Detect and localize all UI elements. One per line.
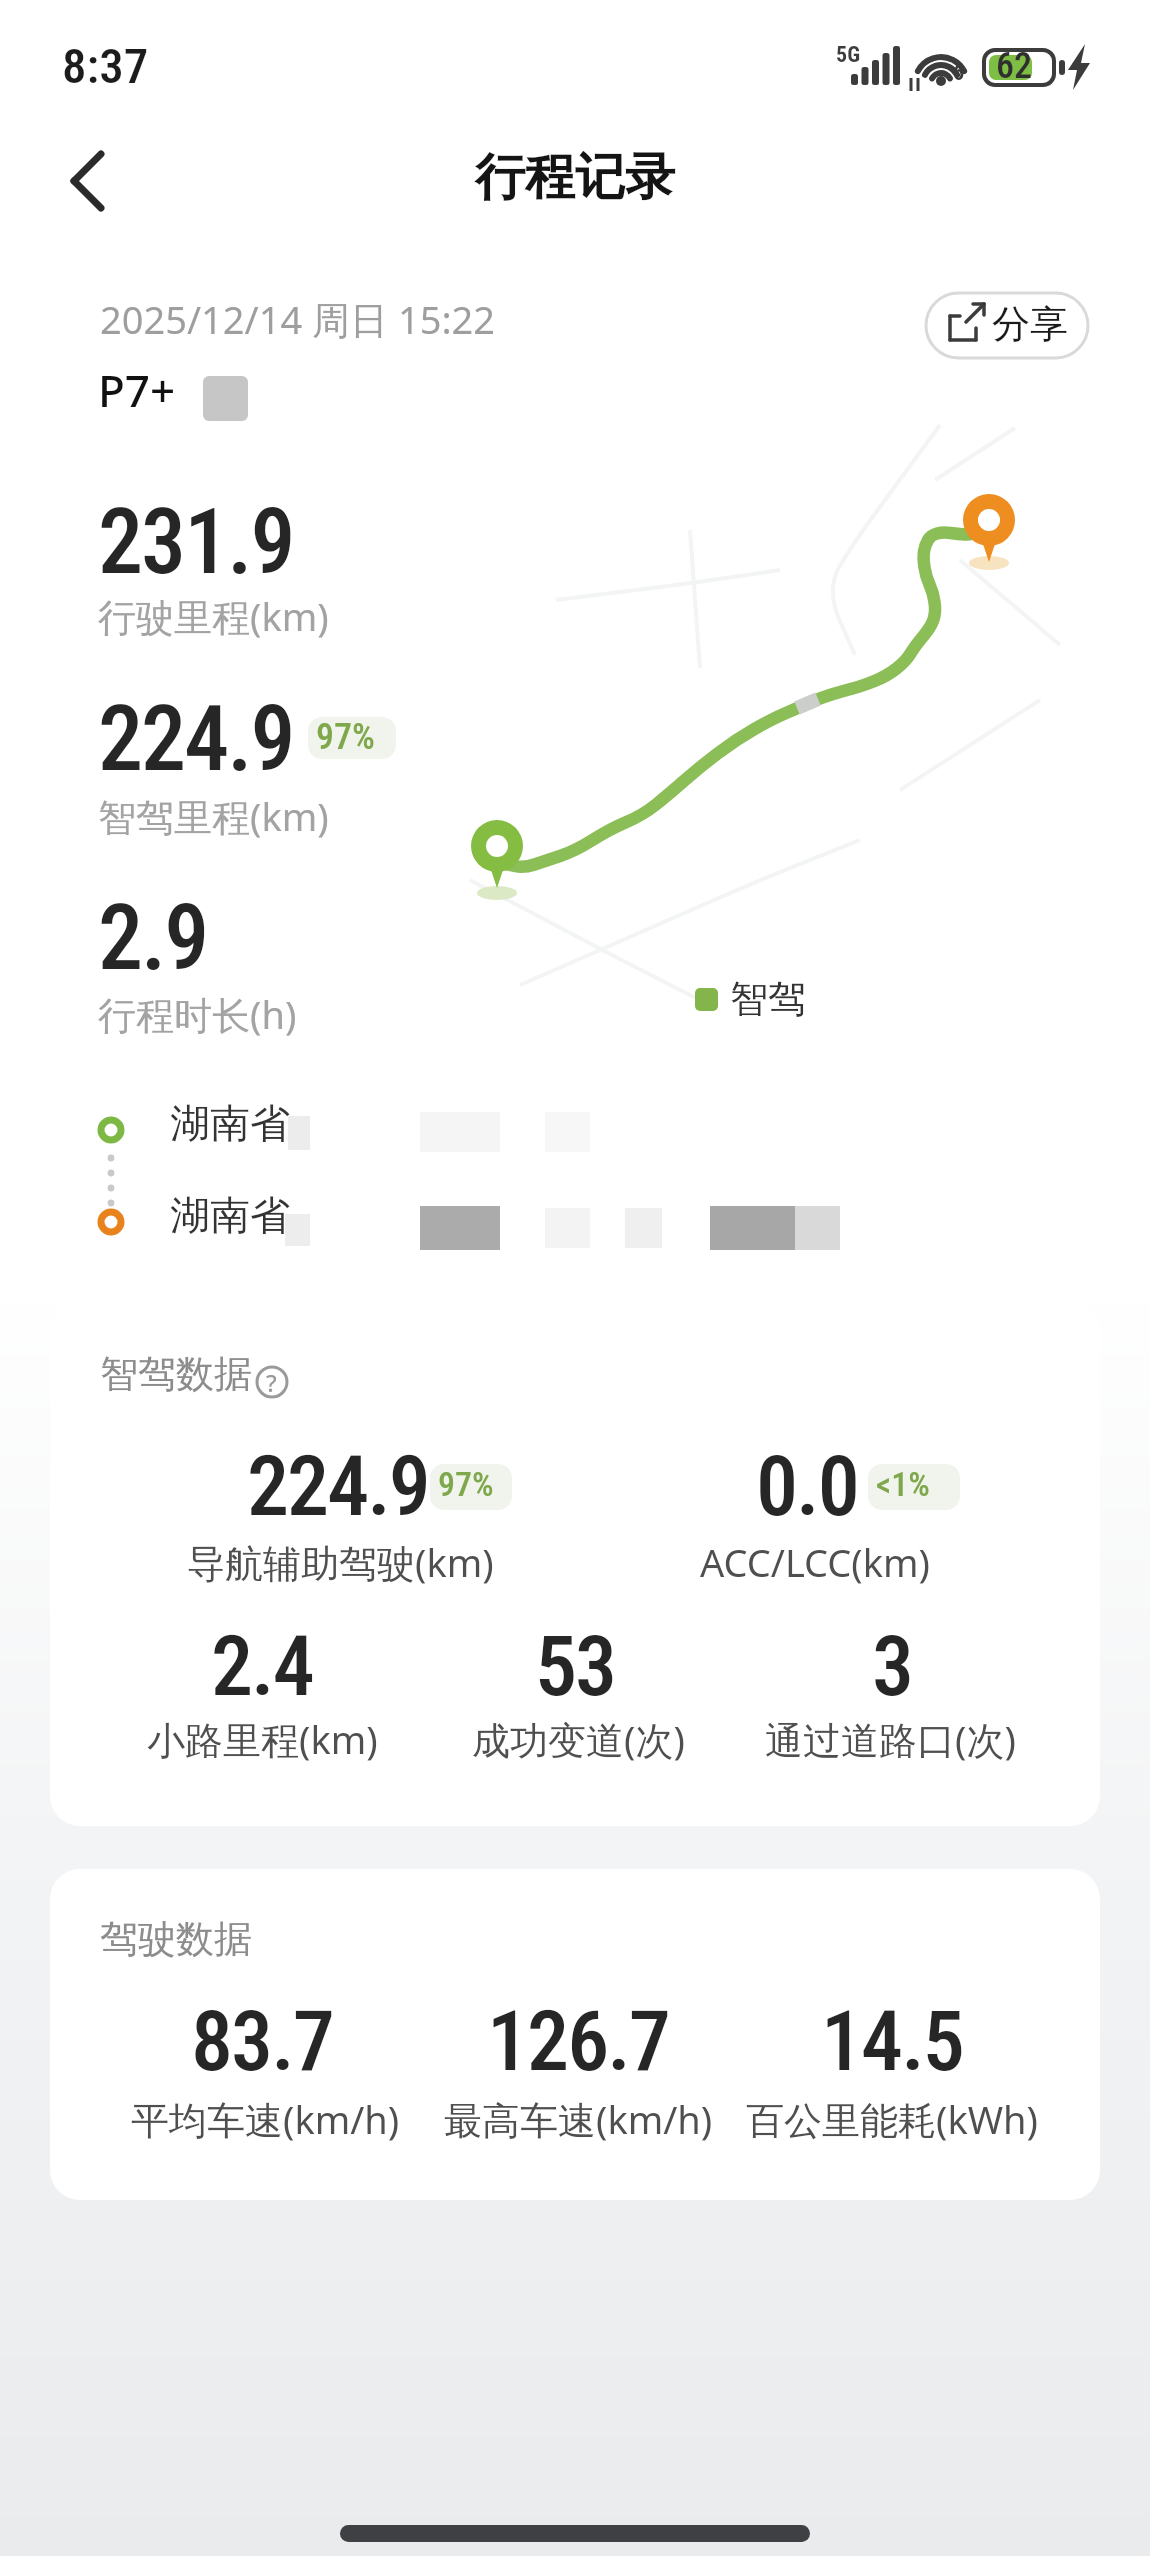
staticText: P7+: [98, 360, 176, 420]
staticText: ACC/LCC(km): [700, 1536, 930, 1588]
staticText: 智驾数据: [100, 1350, 252, 1398]
staticText: 成功变道(次): [472, 1713, 685, 1765]
staticText: 8:37: [62, 38, 149, 95]
staticText: 行程记录: [475, 146, 675, 209]
staticText: 2.4: [211, 1617, 313, 1715]
staticText: 6: [953, 60, 965, 86]
staticText: ?: [266, 1366, 277, 1399]
staticText: 驾驶数据: [100, 1915, 252, 1963]
staticText: 224.9: [98, 687, 294, 792]
staticText: 14.5: [821, 1992, 963, 2090]
staticText: 2.9: [98, 886, 208, 991]
staticText: <1%: [876, 1464, 930, 1504]
staticText: 通过道路口(次): [765, 1713, 1016, 1765]
staticText: 最高车速(km/h): [444, 2093, 713, 2145]
staticText: 分享: [992, 300, 1068, 348]
staticText: 行驶里程(km): [98, 590, 329, 642]
staticText: 0.0: [756, 1437, 858, 1535]
staticText: 智驾: [730, 975, 806, 1023]
staticText: 小路里程(km): [147, 1713, 378, 1765]
staticText: 97%: [316, 716, 375, 758]
staticText: 湖南省: [170, 1190, 290, 1240]
staticText: 行程时长(h): [98, 988, 297, 1040]
staticText: 224.9: [247, 1437, 429, 1535]
staticText: 百公里能耗(kWh): [746, 2093, 1038, 2145]
staticText: 2025/12/14 周日 15:22: [100, 293, 496, 345]
staticText: 83.7: [191, 1992, 333, 2090]
staticText: 平均车速(km/h): [131, 2093, 400, 2145]
staticText: 5G: [836, 42, 861, 68]
staticText: 53: [535, 1617, 616, 1715]
staticText: 导航辅助驾驶(km): [187, 1536, 494, 1588]
staticText: 126.7: [487, 1992, 669, 2090]
staticText: 智驾里程(km): [98, 790, 329, 842]
staticText: 231.9: [98, 490, 294, 595]
staticText: 3: [872, 1617, 913, 1715]
staticText: 62: [996, 45, 1033, 87]
staticText: 97%: [438, 1464, 494, 1504]
staticText: 湖南省: [170, 1098, 290, 1148]
